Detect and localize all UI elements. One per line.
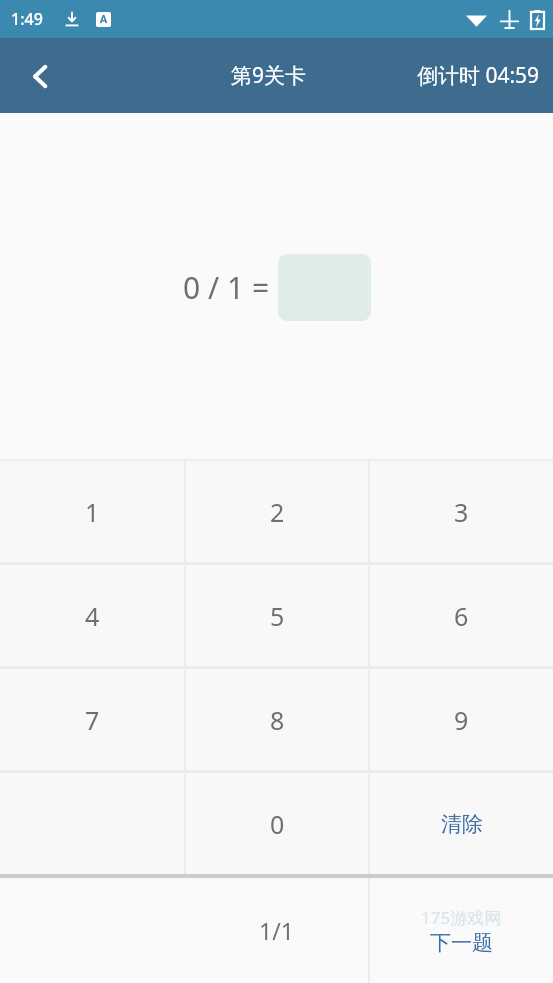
button[interactable]: 1 <box>0 461 184 562</box>
staticText: 下一题 <box>430 930 493 956</box>
staticText: 1:49 <box>11 8 43 30</box>
staticText: 清除 <box>441 811 483 837</box>
button[interactable]: 0 <box>186 773 368 874</box>
button[interactable]: 6 <box>370 565 553 666</box>
staticText: 3 <box>454 495 469 529</box>
button[interactable]: 7 <box>0 669 184 770</box>
staticText: 8 <box>270 703 285 737</box>
button[interactable]: 8 <box>186 669 368 770</box>
staticText: 0 <box>270 807 285 841</box>
staticText: 4 <box>85 599 100 633</box>
button[interactable]: Back <box>12 48 68 104</box>
staticText: 7 <box>85 703 100 737</box>
button[interactable]: 3 <box>370 461 553 562</box>
staticText: 9 <box>454 703 469 737</box>
staticText: 175游戏网 <box>421 906 502 929</box>
staticText: 5 <box>270 599 285 633</box>
staticText: 6 <box>454 599 469 633</box>
button[interactable]: 5 <box>186 565 368 666</box>
button[interactable]: 9 <box>370 669 553 770</box>
button[interactable]: 175游戏网 <box>370 878 553 983</box>
button[interactable]: 清除 <box>370 773 553 874</box>
button[interactable]: 2 <box>186 461 368 562</box>
staticText: 2 <box>270 495 285 529</box>
button[interactable]: 4 <box>0 565 184 666</box>
staticText: 1/1 <box>259 915 294 946</box>
staticText: 0 / 1 = <box>183 267 270 308</box>
staticText: 1 <box>85 495 100 529</box>
staticText: 第9关卡 <box>231 61 307 90</box>
staticText: 倒计时 04:59 <box>417 61 540 90</box>
